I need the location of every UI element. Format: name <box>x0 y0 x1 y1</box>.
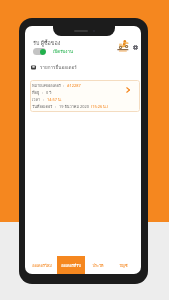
button[interactable]: หมายเลขออเดอร์ <box>30 80 140 112</box>
staticText: (15:26 น.) <box>91 104 108 110</box>
button[interactable]: ประวัติ <box>85 256 111 274</box>
staticText: : <box>43 97 45 102</box>
staticText: ประวัติ <box>92 263 104 269</box>
staticText: บัญชี <box>119 263 128 269</box>
staticText: หมายเลขออเดอร์ <box>32 83 61 89</box>
staticText: เวลา <box>32 97 41 103</box>
button[interactable]: บัญชี <box>111 256 136 274</box>
staticText: ออเดอร์ใหม่ <box>32 263 52 269</box>
staticText: รับ ผู้ซื้อของ <box>33 39 61 48</box>
button[interactable]: Toggle available <box>33 48 46 55</box>
staticText: เปิดรับงาน <box>53 48 73 55</box>
staticText: #12287 <box>67 83 81 88</box>
staticText: 0 วิ <box>46 90 52 96</box>
button[interactable]: ออเดอร์ที่รับ <box>57 256 85 274</box>
staticText: 19 ธันวาคม 2020 <box>59 104 89 110</box>
button[interactable]: App logo <box>117 39 130 53</box>
staticText: รายการยื่นออเดอร์ <box>40 64 77 71</box>
staticText: 14:57 น. <box>47 97 62 103</box>
staticText: : <box>63 83 65 88</box>
staticText: ออเดอร์ที่รับ <box>61 263 81 269</box>
staticText: วันที่ออเดอร์ <box>32 104 53 110</box>
button[interactable]: ออเดอร์ใหม่ <box>27 256 57 274</box>
button[interactable]: Settings <box>131 43 140 52</box>
staticText: : <box>55 104 57 109</box>
staticText: : <box>42 90 44 95</box>
staticText: ที่อยู่ <box>32 90 40 96</box>
